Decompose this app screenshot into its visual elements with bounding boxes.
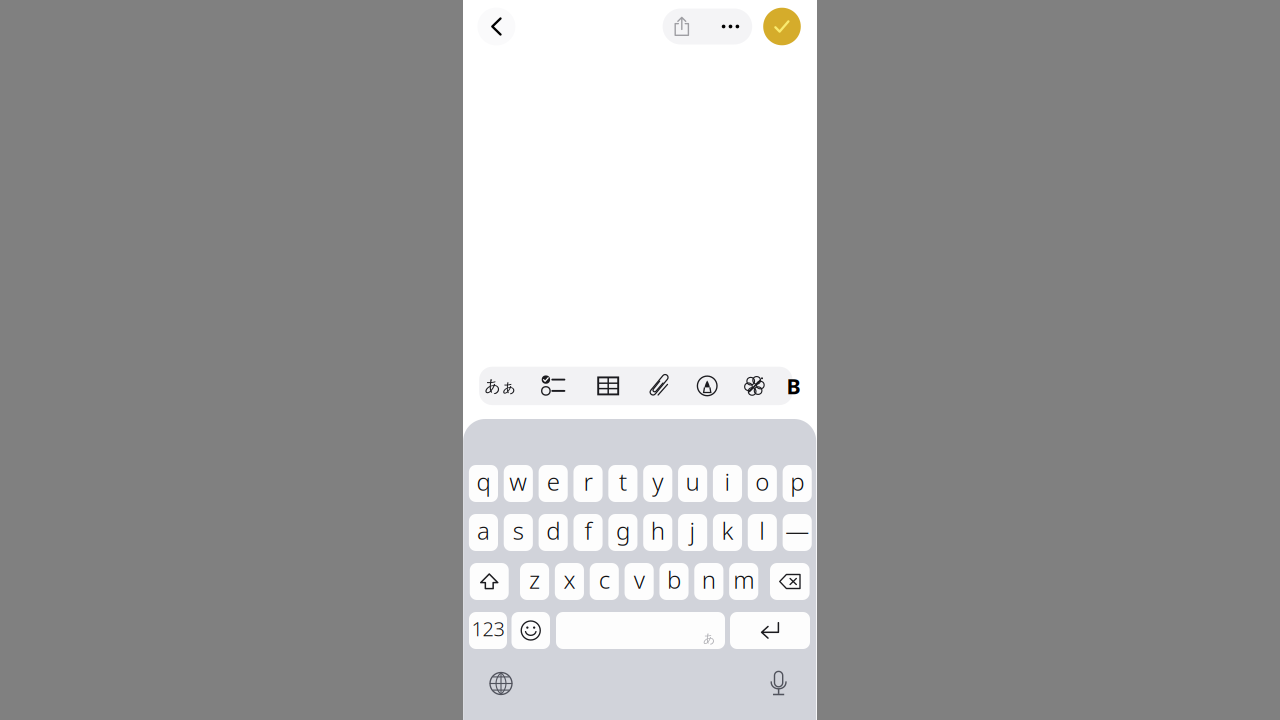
button[interactable]: t [608,465,637,502]
button[interactable]: x [555,563,584,600]
staticText: l [759,515,765,546]
staticText: a [477,515,490,546]
button[interactable]: j [678,514,707,551]
button[interactable]: a [469,514,498,551]
staticText: j [690,515,696,546]
staticText: g [616,515,630,546]
button[interactable]: v [625,563,654,600]
button[interactable]: Bold [786,366,812,406]
button[interactable]: Share [660,8,704,44]
button[interactable]: g [608,514,637,551]
staticText: y [652,466,663,497]
staticText: q [476,466,490,497]
staticText: s [513,515,524,546]
button[interactable]: Return [730,612,810,649]
staticText: o [755,466,769,497]
button[interactable]: p [783,465,812,502]
staticText: p [790,466,804,497]
button[interactable]: Writing Tools [732,366,776,406]
staticText: h [651,515,665,546]
staticText: t [619,466,627,497]
button[interactable]: q [469,465,498,502]
button[interactable]: l [748,514,777,551]
button[interactable]: u [678,465,707,502]
button[interactable]: More options [708,8,752,44]
staticText: k [721,515,733,546]
button[interactable]: z [520,563,549,600]
staticText: b [667,564,681,595]
button[interactable]: Delete [770,563,810,600]
button[interactable]: s [504,514,533,551]
staticText: w [509,466,527,497]
button[interactable]: 123 [469,612,507,649]
staticText: 123 [471,615,504,642]
button[interactable]: h [643,514,672,551]
staticText: d [546,515,560,546]
button[interactable]: f [573,514,603,551]
staticText: あ [703,631,715,646]
button[interactable]: Dictation [759,666,799,700]
button[interactable]: w [504,465,533,502]
staticText: n [702,564,716,595]
staticText: v [634,564,645,595]
staticText: x [563,564,575,595]
button[interactable]: Back [477,7,515,45]
staticText: c [599,564,610,595]
button[interactable]: m [729,563,758,600]
staticText: r [583,466,592,497]
button[interactable]: y [643,465,672,502]
button[interactable]: e [539,465,568,502]
button[interactable]: Space [556,612,725,649]
button[interactable]: Attach file [638,366,682,406]
staticText: u [686,466,700,497]
button[interactable]: Text format [476,366,524,406]
staticText: e [547,466,560,497]
staticText: z [529,564,540,595]
button[interactable]: c [590,563,619,600]
staticText: f [584,515,591,546]
button[interactable]: Markup [685,366,729,406]
button[interactable]: i [713,465,742,502]
button[interactable]: Done [763,8,801,45]
button[interactable]: Table [586,366,630,406]
staticText: B [786,372,800,400]
button[interactable]: r [573,465,603,502]
button[interactable]: o [748,465,777,502]
button[interactable]: — [783,514,812,551]
button[interactable]: b [659,563,688,600]
button[interactable]: d [539,514,568,551]
button[interactable]: n [694,563,723,600]
staticText: i [724,466,730,497]
button[interactable]: Checklist [531,366,575,406]
button[interactable]: k [713,514,742,551]
staticText: あぁ [484,376,516,396]
staticText: — [785,515,809,546]
staticText: m [733,564,754,595]
button[interactable]: Shift [470,563,509,600]
button[interactable]: Next keyboard [481,666,521,700]
button[interactable]: Emoji [511,612,550,649]
